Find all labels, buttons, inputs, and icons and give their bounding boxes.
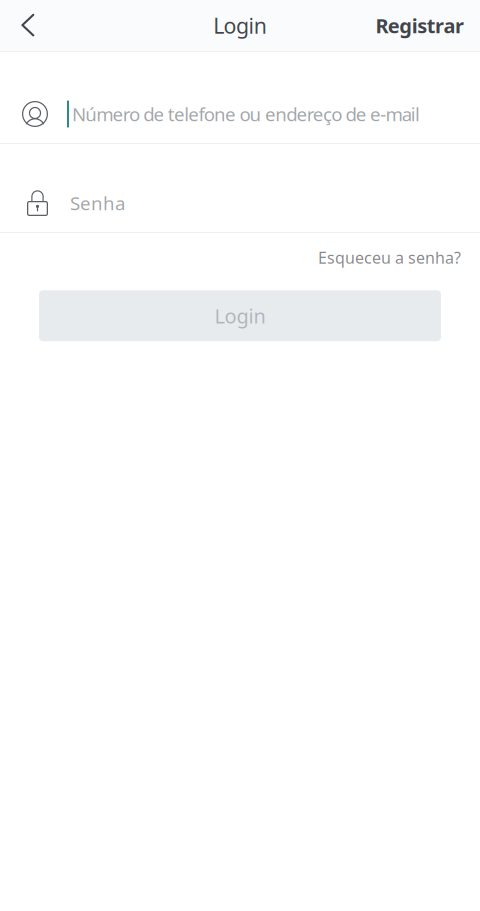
staticText: Esqueceu a senha? [318,247,461,268]
staticText: Senha [70,191,125,215]
staticText: Número de telefone ou endereço de e-mail [72,102,420,126]
button[interactable]: Login [39,290,441,341]
button[interactable]: Senha [0,144,480,232]
staticText: Login [213,11,267,40]
staticText: Login [214,302,265,329]
staticText: Registrar [375,12,464,39]
button[interactable]: Registrar [375,3,464,47]
button[interactable]: Número de telefone ou endereço de e-mail [0,52,480,143]
button[interactable]: Back [6,3,50,47]
button[interactable]: Esqueceu a senha? [318,241,461,274]
